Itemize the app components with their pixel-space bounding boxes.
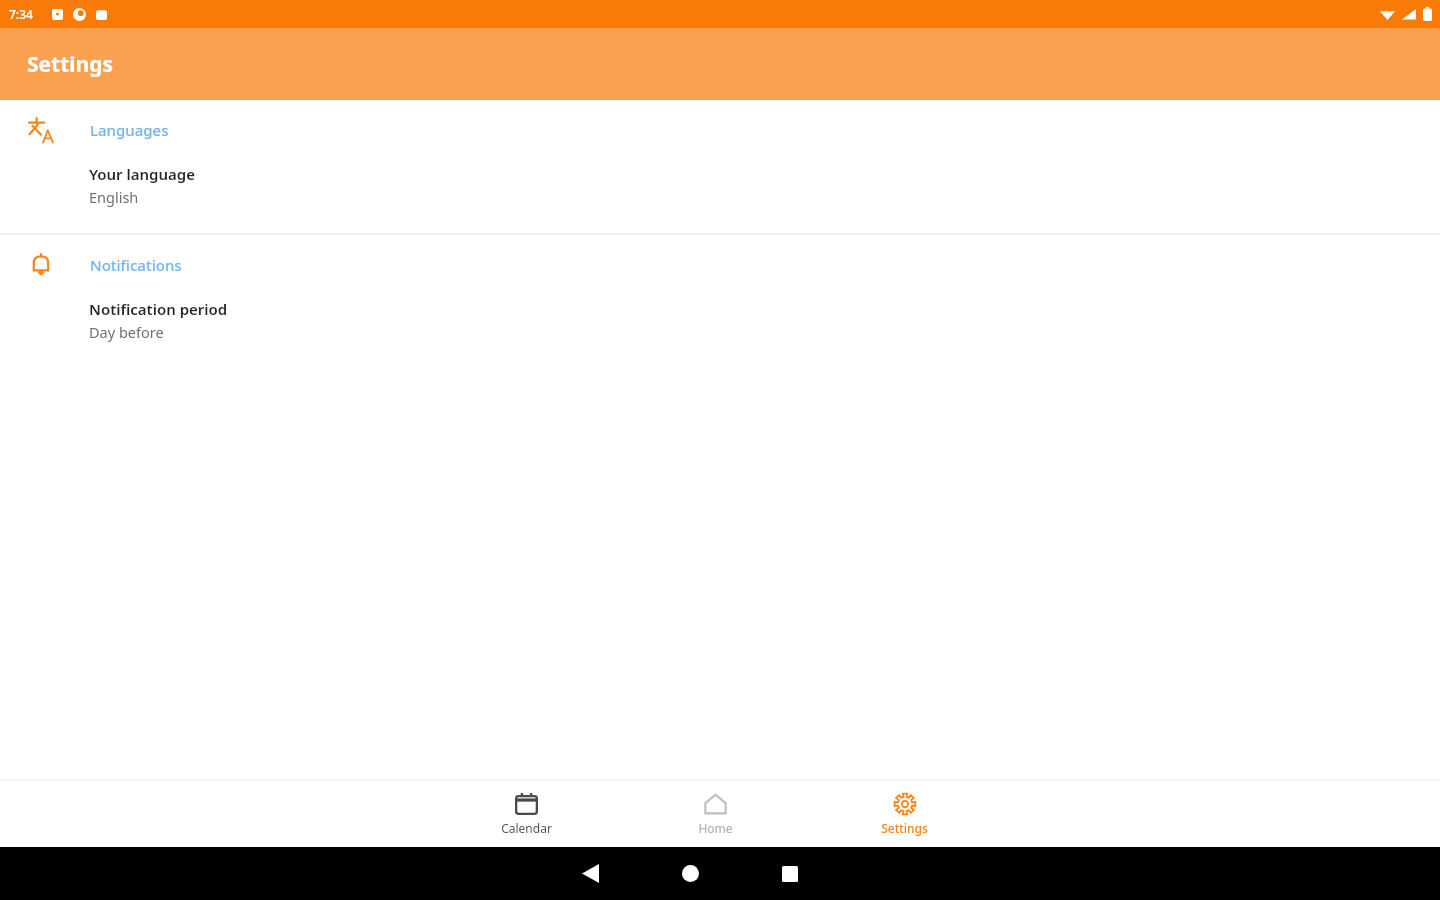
staticText: Notifications [90,255,182,275]
button[interactable]: Settings [810,781,999,847]
staticText: English [89,187,139,207]
button[interactable]: Recent apps [740,847,840,900]
staticText: Home [698,820,733,836]
staticText: Languages [90,120,169,140]
staticText: Day before [89,322,164,342]
button[interactable]: Calendar [432,781,621,847]
button[interactable]: Home [621,781,810,847]
button[interactable]: Home [640,847,740,900]
other: Languages [0,100,90,160]
staticText: 7:34 [9,6,33,22]
button[interactable]: Notifications [0,235,1440,368]
staticText: Settings [27,50,114,79]
other: Notifications [0,235,90,295]
staticText: Notification period [89,299,228,319]
staticText: Calendar [501,820,552,836]
staticText: Your language [89,164,196,184]
button[interactable]: Languages [0,100,1440,233]
button[interactable]: Your language [0,160,1440,233]
button[interactable]: Notification period [0,295,1440,368]
staticText: Settings [881,820,928,836]
button[interactable]: Back [540,847,640,900]
